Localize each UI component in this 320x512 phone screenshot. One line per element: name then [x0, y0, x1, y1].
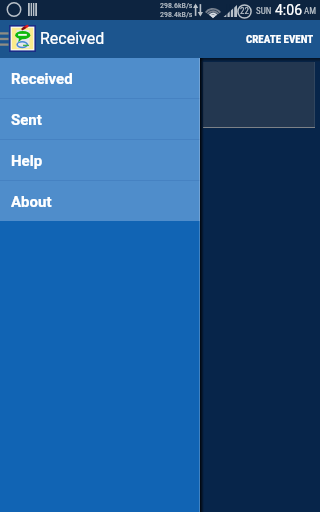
button[interactable]: Open navigation drawer — [0, 20, 9, 58]
staticText: Received — [40, 29, 105, 48]
button[interactable]: CREATE EVENT — [237, 20, 320, 58]
staticText: 298.4kB/s — [160, 10, 193, 19]
button[interactable]: Help — [0, 140, 200, 180]
staticText: CREATE EVENT — [246, 33, 314, 46]
button[interactable]: Sent — [0, 99, 200, 139]
staticText: About — [11, 193, 52, 211]
button[interactable]: Received — [0, 58, 200, 98]
staticText: 4:06 — [275, 2, 302, 18]
staticText: Received — [11, 70, 73, 88]
staticText: SUN — [256, 6, 272, 17]
staticText: Sent — [11, 111, 42, 129]
button[interactable]: About — [0, 181, 200, 221]
staticText: 22 — [240, 6, 249, 17]
staticText: Help — [11, 152, 43, 170]
staticText: 298.6kB/s — [160, 1, 193, 10]
staticText: AM — [304, 6, 316, 17]
